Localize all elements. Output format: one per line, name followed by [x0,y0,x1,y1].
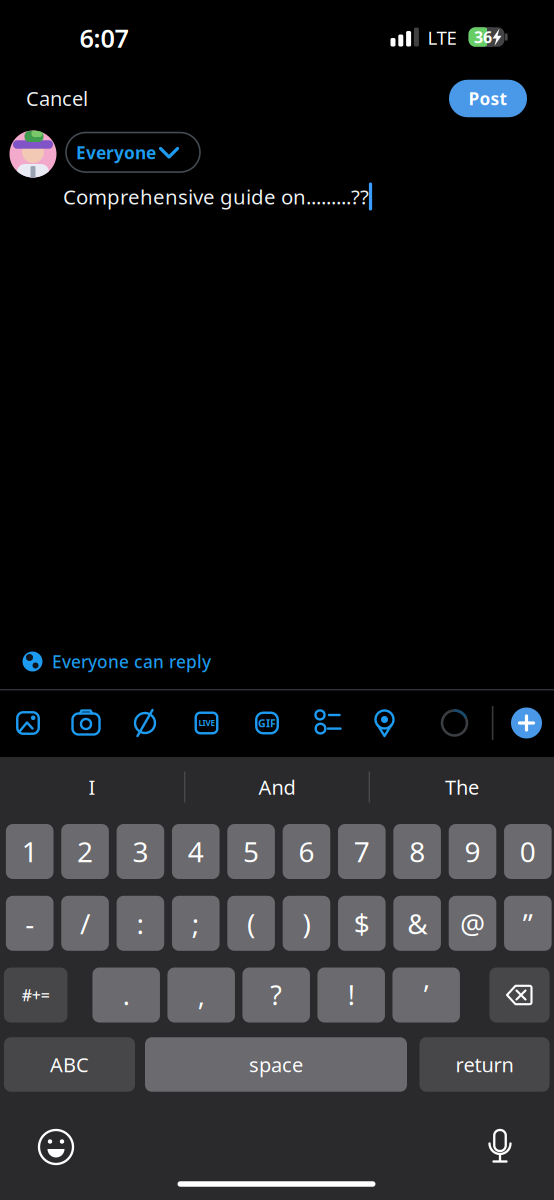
staticText: , [198,977,205,1013]
staticText: : [136,905,144,942]
staticText: Everyone can reply [52,650,211,673]
staticText: ! [348,977,355,1013]
staticText: @ [460,905,485,942]
button[interactable]: / [61,896,109,951]
button[interactable]: . [92,967,160,1022]
button[interactable]: 7 [338,824,386,879]
button[interactable] [36,1127,76,1167]
button[interactable]: 6 [283,824,330,879]
button[interactable]: LIVE [189,706,223,740]
staticText: 1 [22,833,38,870]
button[interactable]: ( [227,896,275,951]
button[interactable]: GIF [250,706,284,740]
staticText: ’ [424,977,429,1013]
button[interactable]: & [393,896,441,951]
staticText: Everyone [76,141,156,164]
button[interactable]: And [187,762,367,812]
staticText: 6 [298,833,314,870]
button[interactable]: 4 [172,824,219,879]
staticText: 6:07 [79,21,128,55]
staticText: LIVE [198,718,214,728]
staticText: 36 [474,26,492,48]
staticText: space [249,1051,303,1078]
button[interactable]: 9 [449,824,496,879]
staticText: ” [523,905,533,942]
staticText: & [407,905,427,942]
button[interactable]: ) [283,896,330,951]
button[interactable]: Everyone can reply [14,645,230,678]
button[interactable]: 3 [117,824,164,879]
staticText: 3 [132,833,148,870]
button[interactable] [69,706,103,740]
staticText: Comprehensive guide on.........?? [63,183,369,210]
staticText: And [258,774,295,800]
staticText: LTE [427,25,456,50]
staticText: 5 [243,833,259,870]
staticText: return [455,1051,513,1078]
button[interactable] [489,967,549,1022]
staticText: 2 [77,833,93,870]
staticText: $ [354,905,370,942]
staticText: ? [270,977,282,1013]
staticText: 4 [188,833,204,870]
button[interactable]: - [6,896,53,951]
button[interactable] [367,706,401,740]
button[interactable]: Cancel [26,85,88,112]
button[interactable] [11,706,45,740]
button[interactable] [128,706,162,740]
button[interactable]: 2 [61,824,109,879]
staticText: / [80,905,90,942]
button[interactable]: ? [242,967,310,1022]
staticText: - [25,905,34,942]
staticText: The [445,774,479,800]
staticText: 7 [354,833,370,870]
button[interactable]: ABC [4,1037,135,1092]
staticText: I [88,774,95,800]
staticText: 9 [464,833,480,870]
staticText: 0 [520,833,536,870]
button[interactable]: 5 [227,824,275,879]
staticText: Post [468,87,507,110]
button[interactable] [306,705,350,739]
staticText: #+= [22,984,50,1006]
staticText: GIF [258,716,276,730]
button[interactable] [509,706,543,740]
staticText: ( [247,905,255,942]
button[interactable]: I [2,762,182,812]
staticText: ; [192,905,200,942]
button[interactable]: : [117,896,164,951]
staticText: 8 [409,833,425,870]
button[interactable]: return [419,1037,549,1092]
button[interactable]: 0 [504,824,552,879]
button[interactable]: #+= [4,967,67,1022]
button[interactable] [9,130,56,177]
button[interactable]: ’ [392,967,460,1022]
staticText: ABC [50,1051,89,1078]
button[interactable]: ! [317,967,385,1022]
button[interactable]: space [145,1037,407,1092]
button[interactable]: Everyone [66,133,200,172]
button[interactable] [482,1124,518,1168]
button[interactable]: 8 [393,824,441,879]
staticText: ) [302,905,310,942]
button[interactable]: ; [172,896,219,951]
button[interactable]: ” [504,896,552,951]
staticText: Cancel [26,85,88,112]
button[interactable]: @ [449,896,496,951]
button[interactable]: Post [449,80,527,117]
button[interactable]: The [372,762,552,812]
button[interactable]: $ [338,896,386,951]
button[interactable]: 1 [6,824,53,879]
button[interactable]: , [167,967,235,1022]
staticText: . [123,977,130,1013]
